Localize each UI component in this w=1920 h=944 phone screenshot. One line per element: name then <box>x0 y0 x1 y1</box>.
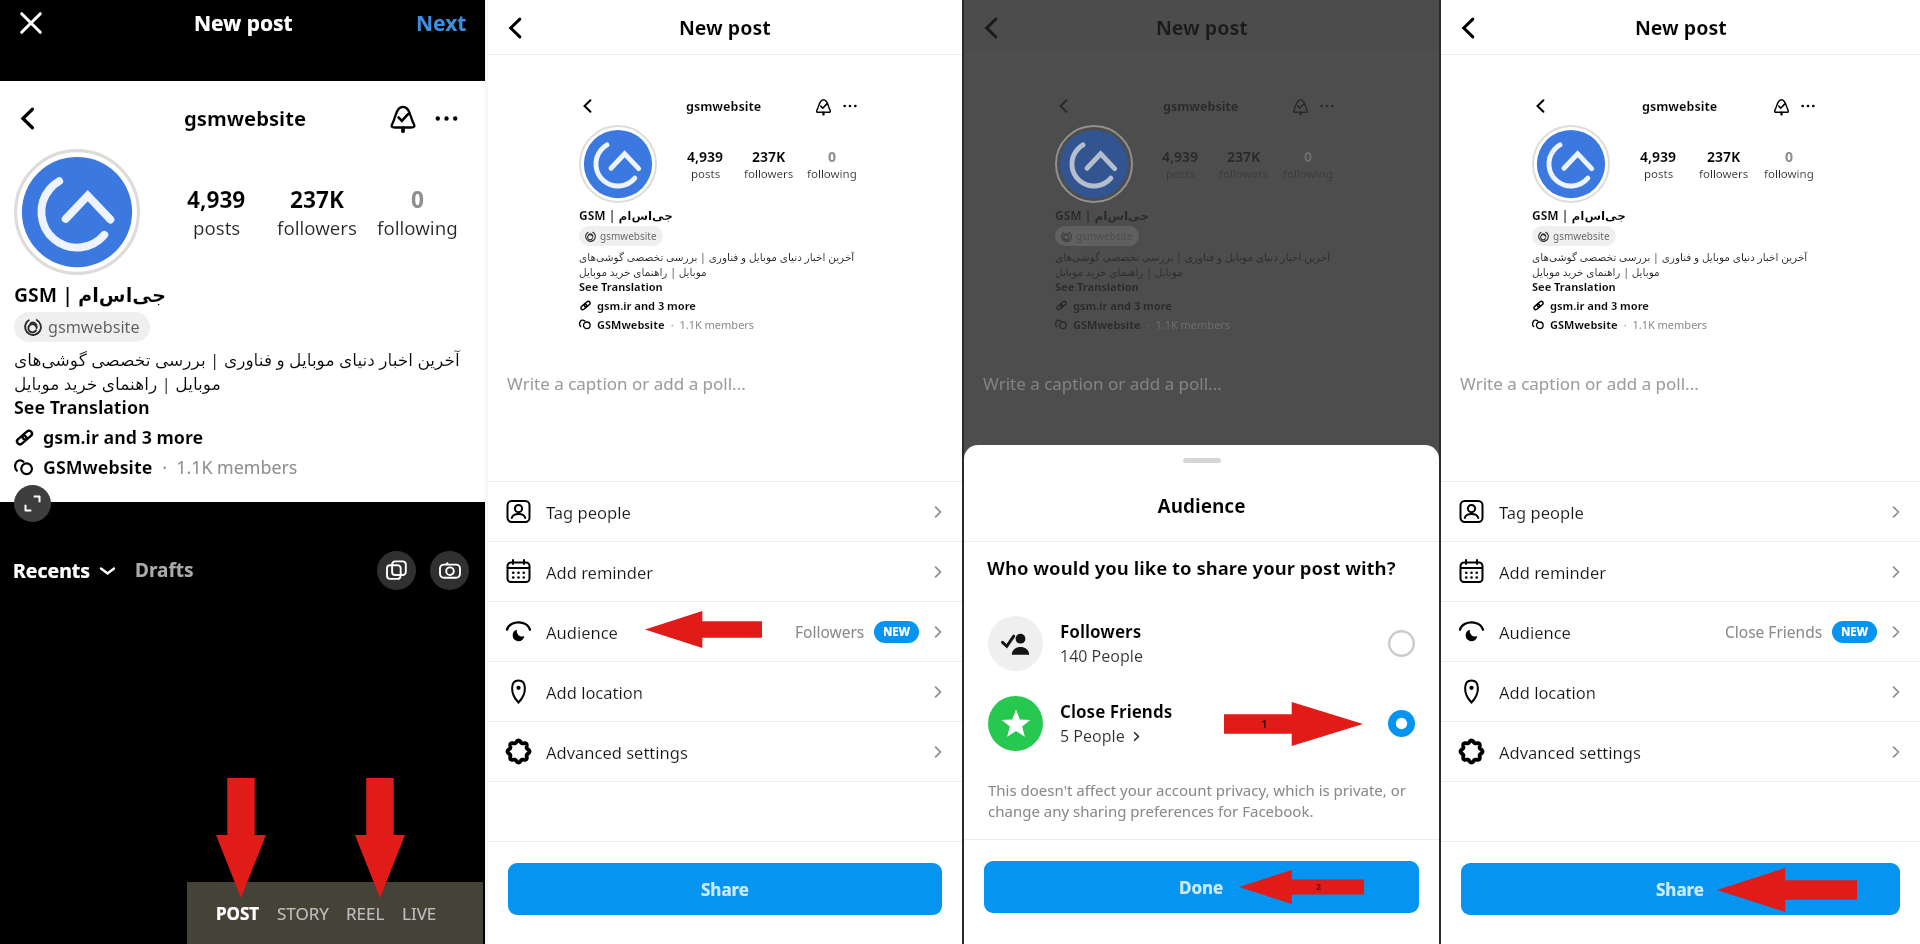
staticText: NEW <box>1841 624 1868 640</box>
staticText: 4,939 <box>1162 147 1199 166</box>
button[interactable]: Followers <box>964 604 1439 682</box>
button[interactable]: Audience <box>488 602 962 661</box>
staticText: Advanced settings <box>1499 741 1641 763</box>
button[interactable]: More options <box>1801 99 1815 113</box>
staticText: GSMwebsite <box>43 455 153 479</box>
staticText: posts <box>1166 166 1196 182</box>
staticText: New post <box>1156 14 1248 41</box>
button[interactable]: Share <box>1461 863 1900 915</box>
staticText: posts <box>691 166 721 182</box>
button[interactable]: Add reminder <box>488 542 962 601</box>
staticText: Close Friends <box>1725 621 1823 642</box>
button[interactable]: gsm.ir and 3 more <box>14 425 204 449</box>
staticText: gsm.ir and 3 more <box>597 298 696 313</box>
staticText: 0 <box>411 184 424 215</box>
staticText: gsm.ir and 3 more <box>1550 298 1649 313</box>
button[interactable]: Notifications <box>1773 98 1790 115</box>
staticText: gsmwebsite <box>48 316 140 338</box>
staticText: Audience <box>1499 621 1571 643</box>
button[interactable]: Notifications <box>389 104 417 132</box>
button[interactable]: gsm.ir and 3 more <box>1532 298 1649 313</box>
staticText: See Translation <box>1055 279 1139 294</box>
staticText: posts <box>193 215 241 240</box>
button[interactable]: gsm.ir and 3 more <box>1055 298 1172 313</box>
button[interactable]: More options <box>435 107 458 130</box>
staticText: following <box>377 215 458 240</box>
button[interactable]: More options <box>1320 99 1334 113</box>
button[interactable]: GSMwebsite <box>1532 317 1708 332</box>
staticText: See Translation <box>579 279 663 294</box>
staticText: 237K <box>752 147 786 166</box>
staticText: gsmwebsite <box>600 229 657 243</box>
button[interactable]: Notifications <box>815 98 832 115</box>
button[interactable]: gsmwebsite <box>14 312 150 342</box>
button[interactable]: Back <box>1456 15 1482 41</box>
staticText: 140 People <box>1060 645 1143 667</box>
button[interactable]: Audience <box>1441 602 1920 661</box>
button[interactable]: Close <box>16 8 46 38</box>
button[interactable]: Back <box>1532 97 1550 115</box>
button[interactable]: gsmwebsite <box>1532 226 1616 246</box>
button[interactable]: Advanced settings <box>1441 722 1920 781</box>
staticText: 0 <box>1304 147 1313 166</box>
button[interactable]: gsmwebsite <box>579 226 663 246</box>
button[interactable]: Back <box>14 104 43 133</box>
staticText: Write a caption or add a poll... <box>507 372 746 395</box>
staticText: Next <box>416 9 467 38</box>
button[interactable]: Add location <box>1441 662 1920 721</box>
button[interactable]: STORY <box>277 902 329 925</box>
staticText: gsmwebsite <box>686 98 762 115</box>
button[interactable]: GSMwebsite <box>1055 317 1231 332</box>
staticText: STORY <box>277 902 329 925</box>
button[interactable]: More options <box>843 99 857 113</box>
button[interactable]: Back <box>1055 97 1073 115</box>
staticText: gsmwebsite <box>1076 229 1133 243</box>
staticText: · 1.1K members <box>153 455 298 479</box>
button[interactable]: GSMwebsite <box>14 455 298 479</box>
staticText: GSM | ‏جی‌اس‌ام <box>1532 207 1626 223</box>
staticText: Add location <box>1499 681 1596 703</box>
button[interactable]: Back <box>503 15 529 41</box>
button[interactable]: Tag people <box>1441 482 1920 541</box>
staticText: Write a caption or add a poll... <box>1460 372 1699 395</box>
staticText: See Translation <box>1532 279 1616 294</box>
button[interactable]: Share <box>508 863 942 915</box>
button[interactable]: Select multiple <box>377 551 416 590</box>
staticText: Who would you like to share your post wi… <box>987 555 1396 580</box>
staticText: 0 <box>828 147 837 166</box>
button[interactable]: Expand <box>14 485 51 522</box>
button[interactable]: LIVE <box>402 902 437 925</box>
staticText: Write a caption or add a poll... <box>983 372 1222 395</box>
button[interactable]: Back <box>579 97 597 115</box>
button[interactable]: Recents <box>13 557 116 584</box>
button[interactable]: Add location <box>488 662 962 721</box>
staticText: · 1.1K members <box>1618 317 1708 332</box>
button[interactable]: Tag people <box>488 482 962 541</box>
staticText: 237K <box>1707 147 1741 166</box>
staticText: Close Friends <box>1060 700 1173 723</box>
button[interactable]: Next <box>416 9 467 38</box>
staticText: 0 <box>1785 147 1794 166</box>
button[interactable]: Drafts <box>135 557 194 583</box>
button[interactable]: Advanced settings <box>488 722 962 781</box>
button[interactable]: Done <box>984 861 1419 913</box>
staticText: GSMwebsite <box>1550 317 1618 332</box>
button[interactable]: Close Friends <box>964 684 1439 762</box>
staticText: Audience <box>546 621 618 643</box>
staticText: آخرین اخبار دنیای موبایل و فناوری | بررس… <box>1532 250 1808 279</box>
button[interactable]: REEL <box>346 902 385 925</box>
staticText: followers <box>744 166 794 182</box>
button[interactable]: gsm.ir and 3 more <box>579 298 696 313</box>
button[interactable]: GSMwebsite <box>579 317 755 332</box>
staticText: POST <box>216 902 260 925</box>
button[interactable]: Camera <box>430 551 469 590</box>
staticText: posts <box>1644 166 1674 182</box>
staticText: New post <box>194 9 293 38</box>
staticText: following <box>807 166 857 182</box>
button[interactable]: gsmwebsite <box>1055 226 1139 246</box>
button[interactable]: Notifications <box>1292 98 1309 115</box>
staticText: gsmwebsite <box>1642 98 1718 115</box>
button[interactable]: Add reminder <box>1441 542 1920 601</box>
button[interactable]: POST <box>216 902 260 925</box>
button[interactable]: Back <box>979 15 1005 41</box>
